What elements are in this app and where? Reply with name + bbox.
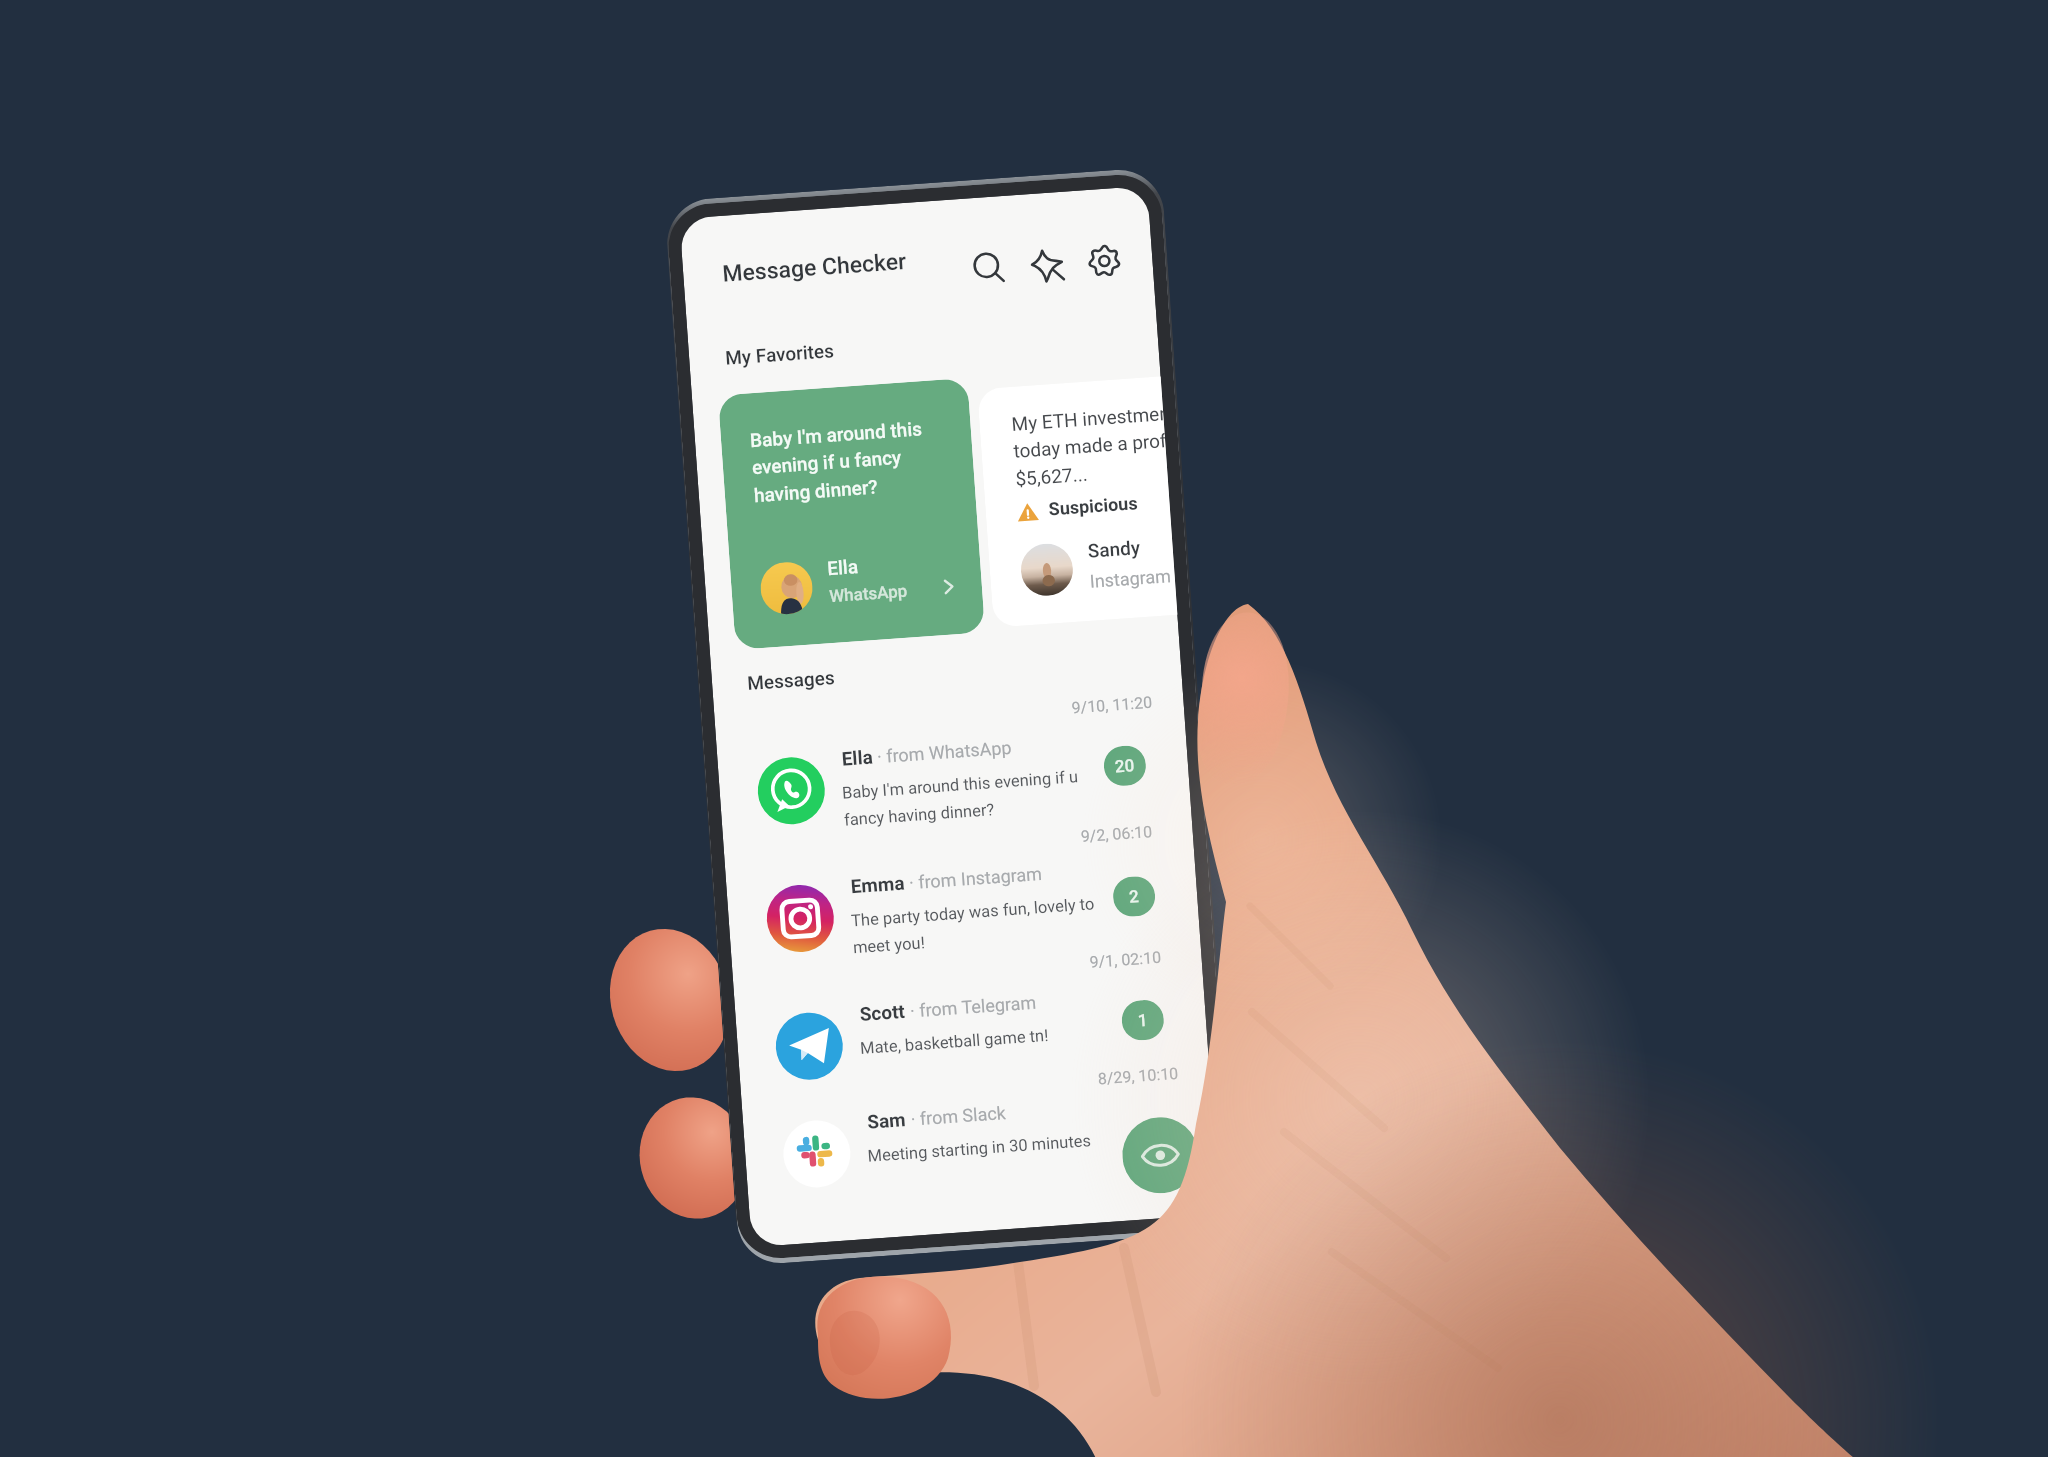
staticText: 8/29, 10:10 bbox=[1097, 1064, 1179, 1088]
button[interactable]: 8/29, 10:10 bbox=[740, 1049, 1217, 1205]
button[interactable]: Settings bbox=[1081, 237, 1128, 284]
staticText: Ella bbox=[841, 745, 873, 770]
staticText: Scott bbox=[859, 1000, 906, 1025]
staticText: 2 bbox=[1128, 886, 1140, 907]
staticText: Emma bbox=[850, 872, 905, 897]
button[interactable]: Search bbox=[966, 246, 1013, 293]
staticText: · from Slack bbox=[905, 1102, 1007, 1130]
staticText: 1 bbox=[1137, 1010, 1148, 1030]
staticText: 20 bbox=[1114, 755, 1136, 776]
staticText: Instagram bbox=[1089, 565, 1172, 592]
staticText: 9/1, 02:10 bbox=[1089, 948, 1162, 972]
staticText: WhatsApp bbox=[828, 581, 909, 606]
button[interactable]: 9/10, 11:20 bbox=[715, 686, 1191, 842]
button[interactable]: 9/2, 06:10 bbox=[724, 813, 1200, 970]
staticText: Meeting starting in 30 minutes bbox=[867, 1131, 1092, 1166]
button[interactable]: My ETH investment today made a profit $5… bbox=[977, 376, 1177, 628]
button[interactable]: 9/1, 02:10 bbox=[733, 941, 1209, 1098]
staticText: 9/2, 06:10 bbox=[1080, 822, 1153, 846]
staticText: Baby I'm around this evening if u fancy … bbox=[841, 767, 1081, 830]
staticText: My ETH investment today made a profit $5… bbox=[1011, 402, 1168, 491]
staticText: The party today was fun, lovely to meet … bbox=[850, 894, 1097, 957]
staticText: Ella bbox=[826, 555, 859, 579]
staticText: Message Checker bbox=[721, 248, 908, 288]
staticText: Sam bbox=[866, 1108, 907, 1133]
staticText: Mate, basketball game tn! bbox=[859, 1026, 1049, 1058]
staticText: Messages bbox=[746, 666, 836, 694]
staticText: Suspicious bbox=[1048, 492, 1139, 519]
button[interactable]: Scan messages bbox=[1120, 1115, 1201, 1196]
staticText: · from Telegram bbox=[905, 992, 1037, 1022]
staticText: Sandy bbox=[1087, 536, 1141, 562]
button[interactable]: Baby I'm around this evening if u fancy … bbox=[718, 378, 985, 650]
staticText: My Favorites bbox=[724, 339, 835, 369]
button[interactable]: Pin bbox=[1024, 241, 1071, 288]
staticText: Baby I'm around this evening if u fancy … bbox=[749, 417, 927, 507]
staticText: · from WhatsApp bbox=[872, 737, 1013, 767]
staticText: · from Instagram bbox=[904, 863, 1043, 893]
staticText: 9/10, 11:20 bbox=[1071, 693, 1153, 717]
